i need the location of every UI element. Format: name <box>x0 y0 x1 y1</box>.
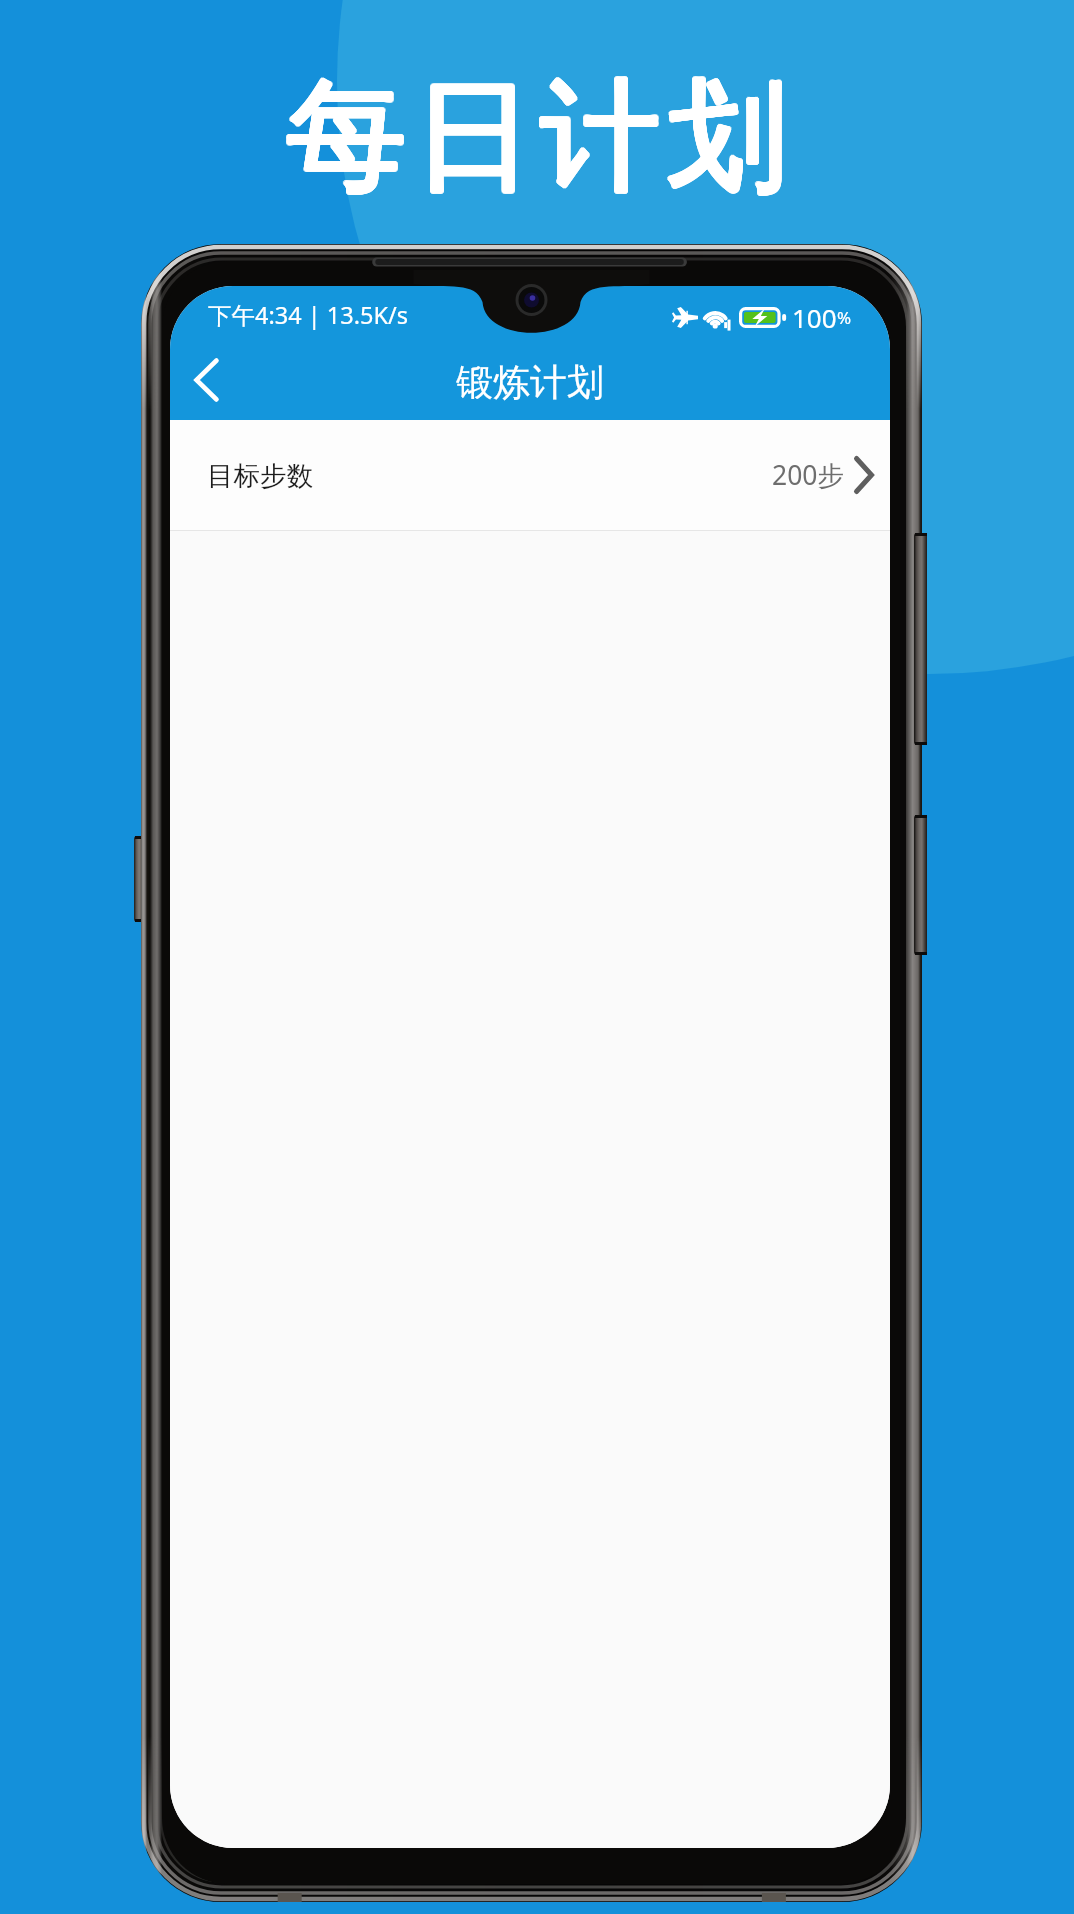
staticText: 每日计划 <box>285 60 793 211</box>
staticText: 下午4:34 | 13.5K/s <box>208 299 408 331</box>
staticText: 每日计划 <box>283 63 791 214</box>
staticText: 每日计划 <box>284 59 792 210</box>
staticText: 每日计划 <box>285 62 793 213</box>
staticText: 每日计划 <box>282 63 790 214</box>
staticText: 每日计划 <box>281 62 789 213</box>
staticText: 每日计划 <box>283 59 791 210</box>
staticText: 200步 <box>772 457 844 493</box>
staticText: 每日计划 <box>283 61 791 212</box>
staticText: 每日计划 <box>281 61 789 212</box>
staticText: % <box>837 306 852 329</box>
staticText: 每日计划 <box>282 59 790 210</box>
staticText: 每日计划 <box>285 61 793 212</box>
staticText: 每日计划 <box>284 63 792 214</box>
staticText: 100 <box>792 300 837 335</box>
button[interactable]: 目标步数 <box>170 420 890 530</box>
staticText: 目标步数 <box>207 459 313 492</box>
staticText: 锻炼计划 <box>456 359 604 406</box>
button[interactable]: Back <box>170 342 244 418</box>
staticText: 每日计划 <box>281 60 789 211</box>
